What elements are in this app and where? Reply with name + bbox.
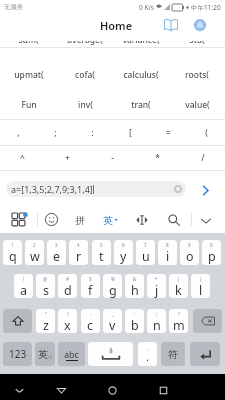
staticText: , (17, 127, 20, 139)
button[interactable]: value( (169, 90, 225, 120)
button[interactable]: * (147, 274, 166, 298)
staticText: c (87, 317, 94, 333)
button[interactable]: _ (103, 309, 122, 333)
button[interactable]: Emoji (45, 213, 58, 226)
staticText: b (131, 317, 139, 333)
button[interactable]: $ (81, 274, 100, 298)
staticText: q (9, 248, 17, 265)
button[interactable]: a=[1,3,5;2,7,9;3,1,4] (6, 181, 186, 197)
staticText: ( (178, 276, 180, 282)
staticText: h (131, 282, 139, 298)
button[interactable]: * (135, 146, 180, 170)
button[interactable]: # (58, 274, 77, 298)
button[interactable]: Fun (0, 90, 57, 120)
button[interactable]: Keyboard layouts (12, 213, 26, 227)
button[interactable]: , (0, 120, 37, 145)
button[interactable]: 7 (136, 240, 155, 265)
button[interactable]: ( (187, 120, 225, 145)
button[interactable]: upmat( (0, 60, 57, 90)
button[interactable]: - (90, 146, 135, 170)
button[interactable]: Enter (190, 342, 220, 366)
button[interactable]: ; (147, 309, 166, 333)
button[interactable]: 5 (92, 240, 111, 265)
button[interactable]: ! (14, 274, 33, 298)
staticText: 5 (100, 242, 103, 248)
staticText: 英 (38, 348, 48, 361)
button[interactable]: 0 (202, 240, 221, 265)
button[interactable]: - (81, 309, 100, 333)
staticText: calculus( (123, 69, 159, 81)
button[interactable]: Recent apps (154, 381, 172, 399)
button[interactable]: % (103, 274, 122, 298)
button[interactable]: = (149, 120, 187, 145)
staticText: t (99, 248, 104, 265)
button[interactable]: 英 (103, 212, 118, 228)
button[interactable]: Shift (3, 309, 32, 333)
button[interactable]: ^ (0, 146, 45, 170)
staticText: / (67, 311, 69, 317)
button[interactable]: cofa( (57, 60, 113, 90)
button[interactable]: / (58, 309, 77, 333)
button[interactable]: Settings (186, 11, 214, 39)
button[interactable]: : (125, 309, 144, 333)
staticText: ; (54, 127, 57, 139)
staticText: f (88, 282, 93, 298)
button[interactable]: ) (191, 274, 210, 298)
staticText: 4 (77, 242, 80, 248)
button[interactable]: 3 (47, 240, 66, 265)
button[interactable]: @ (36, 274, 55, 298)
staticText: 123 (9, 347, 27, 361)
staticText: % (111, 276, 115, 282)
button[interactable]: Move cursor (136, 214, 148, 226)
button[interactable]: Search (168, 214, 180, 226)
button[interactable]: 2 (25, 240, 44, 265)
button[interactable]: tran( (113, 90, 169, 120)
staticText: 3 (55, 242, 58, 248)
button[interactable]: 6 (114, 240, 133, 265)
button[interactable]: Space (88, 342, 133, 366)
button[interactable]: Manual (157, 11, 185, 39)
button[interactable]: 1 (3, 240, 22, 265)
staticText: - (90, 311, 92, 317)
button[interactable]: ? (169, 309, 188, 333)
button[interactable]: / (180, 146, 225, 170)
button[interactable]: Collapse keyboard (200, 215, 212, 227)
button[interactable]: inv( (57, 90, 113, 120)
button[interactable]: Home (103, 381, 121, 399)
button[interactable]: 4 (69, 240, 88, 265)
button[interactable]: 英 (35, 342, 55, 366)
button[interactable]: Send (193, 178, 217, 202)
staticText: variance( (122, 41, 160, 46)
button[interactable]: 9 (180, 240, 199, 265)
button[interactable]: 8 (158, 240, 177, 265)
staticText: 符 (168, 348, 178, 361)
button[interactable]: Backspace (193, 309, 222, 333)
staticText: + (65, 152, 70, 164)
staticText: abc (64, 348, 79, 360)
staticText: a (20, 282, 28, 298)
button[interactable]: [ (111, 120, 149, 145)
button[interactable]: + (45, 146, 90, 170)
staticText: @ (43, 276, 48, 282)
staticText: 中 (48, 354, 53, 360)
button[interactable]: Back (52, 381, 70, 399)
button[interactable]: 123 (3, 342, 32, 366)
button[interactable]: 拼 (72, 212, 88, 228)
staticText: [ (129, 127, 132, 139)
button[interactable]: calculus( (113, 60, 169, 90)
button[interactable]: & (125, 274, 144, 298)
button[interactable]: Hide keyboard (10, 381, 28, 399)
button[interactable]: ( (169, 274, 188, 298)
staticText: w (30, 248, 40, 265)
button[interactable]: " (36, 309, 55, 333)
button[interactable]: 符 (161, 342, 185, 366)
button[interactable]: : (74, 120, 111, 145)
staticText: roots( (185, 69, 209, 81)
button[interactable]: ; (37, 120, 74, 145)
button[interactable]: abc (58, 342, 85, 366)
staticText: = (166, 127, 171, 139)
button[interactable]: , (138, 342, 157, 366)
staticText: 无服务 (4, 3, 24, 11)
button[interactable]: roots( (169, 60, 225, 90)
button[interactable]: Clear text (174, 185, 182, 193)
